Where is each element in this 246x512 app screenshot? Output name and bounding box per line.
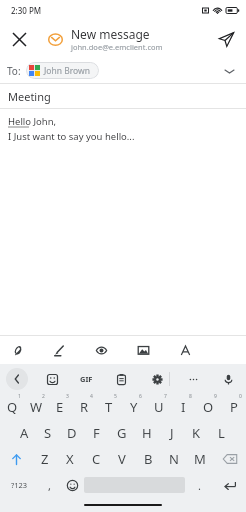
button[interactable]: Backspace xyxy=(213,446,246,472)
button[interactable]: D xyxy=(60,420,84,446)
staticText: john.doe@e.emclient.com xyxy=(71,42,163,52)
staticText: C xyxy=(92,450,101,468)
button[interactable]: Q xyxy=(0,394,24,420)
staticText: 4 xyxy=(90,393,93,400)
staticText: John Brown xyxy=(44,65,90,77)
button[interactable]: Clipboard xyxy=(111,369,131,389)
staticText: X xyxy=(66,450,74,468)
button[interactable]: R xyxy=(72,394,96,420)
button[interactable]: Emoji xyxy=(61,472,84,498)
staticText: U xyxy=(154,398,164,416)
staticText: 2:30 PM xyxy=(11,5,42,16)
button[interactable]: K xyxy=(184,420,209,446)
staticText: B xyxy=(144,450,153,468)
staticText: Meeting xyxy=(8,89,51,104)
button[interactable]: H xyxy=(134,420,159,446)
button[interactable]: Enter xyxy=(213,472,246,498)
staticText: 9 xyxy=(214,393,217,400)
button[interactable]: N xyxy=(161,446,187,472)
staticText: F xyxy=(93,424,100,442)
button[interactable]: X xyxy=(57,446,83,472)
staticText: A xyxy=(20,424,29,442)
button[interactable]: GIF xyxy=(78,372,95,386)
button[interactable]: Draw xyxy=(47,338,71,362)
button[interactable]: John Brown xyxy=(26,62,99,79)
button[interactable]: Back xyxy=(6,368,28,390)
staticText: GIF xyxy=(80,374,93,384)
button[interactable]: P xyxy=(221,394,246,420)
button[interactable]: Voice input xyxy=(218,369,238,389)
staticText: . xyxy=(198,478,201,493)
staticText: I xyxy=(181,398,186,416)
staticText: Q xyxy=(7,398,18,416)
staticText: E xyxy=(56,398,64,416)
staticText: V xyxy=(118,450,126,468)
button[interactable]: Shift xyxy=(0,446,32,472)
button[interactable]: , xyxy=(38,472,61,498)
button[interactable]: B xyxy=(135,446,161,472)
button[interactable]: Close xyxy=(5,25,33,53)
staticText: I Just want to say you hello... xyxy=(8,130,135,143)
button[interactable]: Settings xyxy=(147,369,167,389)
staticText: 3 xyxy=(66,393,69,400)
button[interactable]: F xyxy=(84,420,109,446)
button[interactable]: Send xyxy=(212,25,240,53)
staticText: D xyxy=(67,424,77,442)
staticText: 1 xyxy=(18,393,21,400)
button[interactable]: Text formatting xyxy=(173,338,197,362)
staticText: Hello John, xyxy=(8,115,57,128)
staticText: , xyxy=(48,478,51,493)
staticText: 7 xyxy=(164,393,167,400)
button[interactable]: Meeting xyxy=(0,84,246,108)
button[interactable]: V xyxy=(109,446,135,472)
staticText: H xyxy=(142,424,152,442)
staticText: S xyxy=(44,424,52,442)
staticText: G xyxy=(117,424,127,442)
button[interactable]: Attach file xyxy=(5,338,29,362)
staticText: J xyxy=(170,424,174,442)
button[interactable]: Expand recipients xyxy=(219,61,239,81)
staticText: N xyxy=(169,450,179,468)
staticText: P xyxy=(230,398,238,416)
button[interactable]: E xyxy=(48,394,72,420)
button[interactable]: I xyxy=(171,394,196,420)
staticText: New message xyxy=(71,26,150,42)
button[interactable]: To: xyxy=(0,58,246,83)
button[interactable]: W xyxy=(24,394,48,420)
button[interactable]: Insert image xyxy=(131,338,155,362)
staticText: ?123 xyxy=(11,480,28,490)
staticText: 8 xyxy=(189,393,192,400)
staticText: 6 xyxy=(139,393,142,400)
button[interactable]: O xyxy=(196,394,221,420)
staticText: 0 xyxy=(239,393,242,400)
staticText: R xyxy=(80,398,89,416)
button[interactable]: C xyxy=(83,446,109,472)
button[interactable]: Preview xyxy=(89,338,113,362)
button[interactable]: L xyxy=(209,420,234,446)
button[interactable]: A xyxy=(12,420,36,446)
button[interactable]: U xyxy=(146,394,171,420)
staticText: M xyxy=(194,450,206,468)
button[interactable]: G xyxy=(109,420,134,446)
button[interactable]: S xyxy=(36,420,60,446)
button[interactable]: Y xyxy=(121,394,146,420)
staticText: L xyxy=(218,424,225,442)
staticText: T xyxy=(105,398,113,416)
staticText: O xyxy=(203,398,214,416)
button[interactable]: Stickers xyxy=(42,369,62,389)
staticText: To: xyxy=(7,64,21,78)
staticText: W xyxy=(30,398,43,416)
button[interactable]: J xyxy=(159,420,184,446)
button[interactable]: ?123 xyxy=(0,472,38,498)
button[interactable]: T xyxy=(96,394,121,420)
button[interactable]: Hello John, xyxy=(0,109,246,335)
button[interactable]: M xyxy=(187,446,213,472)
button[interactable]: Z xyxy=(32,446,57,472)
staticText: 5 xyxy=(114,393,117,400)
staticText: 2 xyxy=(42,393,45,400)
staticText: Z xyxy=(41,450,49,468)
staticText: K xyxy=(192,424,201,442)
button[interactable]: More options xyxy=(183,369,203,389)
button[interactable]: . xyxy=(185,472,213,498)
